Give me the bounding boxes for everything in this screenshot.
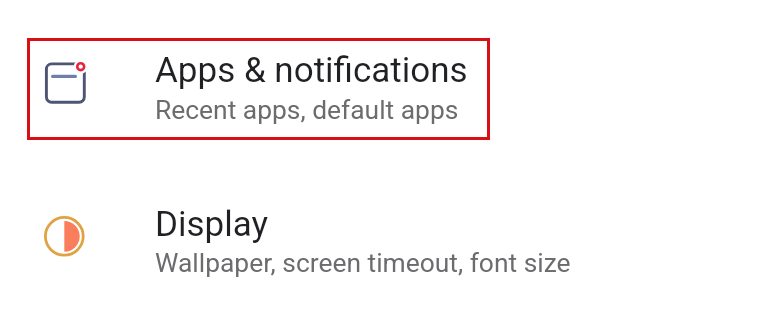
staticText: Wallpaper, screen timeout, font size [155,248,571,279]
staticText: Apps & notifications [155,50,468,91]
staticText: Display [155,204,269,245]
staticText: Recent apps, default apps [155,95,459,126]
button[interactable]: Apps and notifications [27,38,490,140]
other: Apps and notifications [44,60,88,104]
other: Display [44,216,88,260]
button[interactable]: Display [27,188,607,290]
